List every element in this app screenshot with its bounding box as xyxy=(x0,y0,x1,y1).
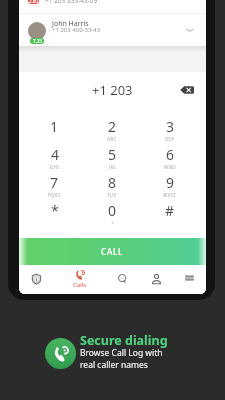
button[interactable]: 2 xyxy=(83,117,141,145)
staticText: 5 xyxy=(108,145,117,164)
staticText: ABC xyxy=(107,136,117,142)
button[interactable]: Backspace xyxy=(180,85,194,95)
button[interactable]: * xyxy=(26,201,83,229)
staticText: +1 203 400-33-43 xyxy=(52,26,101,34)
staticText: 7 xyxy=(50,173,59,192)
button[interactable]: Contacts xyxy=(142,265,170,294)
staticText: WXYZ xyxy=(163,192,177,198)
staticText: 1 xyxy=(50,117,59,136)
staticText: Browse Call Log with real caller names xyxy=(80,347,163,371)
staticText: 7.25 xyxy=(33,38,42,44)
button[interactable]: 7 xyxy=(26,173,83,201)
staticText: 2 xyxy=(108,117,117,136)
button[interactable]: CALL xyxy=(19,238,206,265)
staticText: # xyxy=(165,201,175,220)
button[interactable]: 6 xyxy=(141,145,199,173)
button[interactable]: Messages xyxy=(108,265,136,294)
staticText: CALL xyxy=(101,246,124,257)
button[interactable]: 0 xyxy=(83,201,141,229)
button[interactable]: 8 xyxy=(83,173,141,201)
button[interactable]: Expand xyxy=(184,24,196,36)
button[interactable]: 4 xyxy=(26,145,83,173)
staticText: +1 203 333-43-09 xyxy=(45,0,98,5)
staticText: 4 xyxy=(51,145,60,164)
button[interactable]: Calls xyxy=(66,265,94,294)
staticText: Calls xyxy=(73,281,87,289)
staticText: Secure dialing xyxy=(80,332,168,349)
staticText: MNO xyxy=(164,164,176,170)
staticText: JKL xyxy=(109,164,117,170)
staticText: TUV xyxy=(107,192,117,198)
button[interactable]: 7.25 xyxy=(19,14,206,46)
button[interactable]: 9 xyxy=(141,173,199,201)
button[interactable]: 3 xyxy=(141,117,199,145)
button[interactable]: Menu xyxy=(175,265,203,294)
button[interactable]: 2.00 xyxy=(19,0,206,13)
staticText: 9 xyxy=(166,173,175,192)
staticText: John Harris xyxy=(52,19,89,29)
button[interactable]: Protection xyxy=(22,265,50,294)
staticText: 2.00 xyxy=(29,0,38,4)
staticText: 3 xyxy=(166,117,175,136)
staticText: * xyxy=(51,201,59,220)
staticText: PQRS xyxy=(48,192,61,198)
button[interactable]: 5 xyxy=(83,145,141,173)
staticText: + xyxy=(111,220,114,226)
staticText: DEF xyxy=(165,136,175,142)
staticText: GHI xyxy=(50,164,60,170)
staticText: 0 xyxy=(108,201,117,220)
staticText: 6 xyxy=(166,145,175,164)
staticText: +1 203 xyxy=(92,81,133,99)
button[interactable]: # xyxy=(141,201,199,229)
button[interactable]: 1 xyxy=(26,117,83,145)
staticText: 8 xyxy=(108,173,117,192)
